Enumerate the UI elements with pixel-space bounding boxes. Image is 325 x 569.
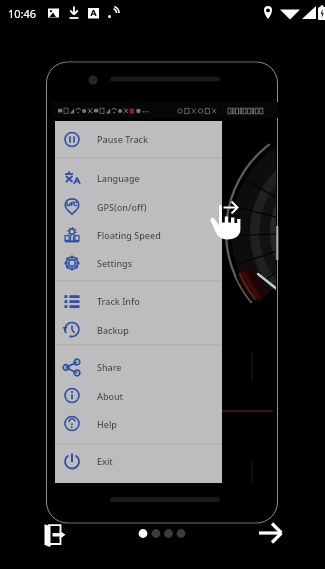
button[interactable]: Skip (36, 517, 68, 549)
staticText: Floating Speed (97, 229, 161, 241)
staticText: GPS(on/off) (97, 201, 147, 213)
button[interactable]: About (55, 382, 222, 410)
staticText: Share (97, 361, 122, 373)
staticText: Exit (97, 455, 113, 467)
staticText: Language (97, 172, 140, 184)
staticText: Help (97, 418, 117, 430)
staticText: Track Info (97, 295, 140, 307)
button[interactable]: Exit (55, 447, 222, 483)
button[interactable]: GPS(on/off) (55, 193, 222, 221)
button[interactable]: Pause Track (55, 121, 222, 158)
button[interactable]: Backup (55, 316, 222, 346)
staticText: Pause Track (97, 133, 148, 145)
staticText: Settings (97, 257, 133, 269)
staticText: Backup (97, 324, 129, 336)
button[interactable]: Settings (55, 249, 222, 281)
button[interactable]: Track Info (55, 287, 222, 316)
button[interactable]: Help (55, 410, 222, 445)
staticText: About (97, 390, 124, 402)
button[interactable]: Floating Speed (55, 221, 222, 250)
button[interactable]: Language (55, 164, 222, 193)
button[interactable]: Share (55, 353, 222, 382)
staticText: 10:46 (8, 6, 37, 21)
button[interactable]: Next (256, 518, 288, 550)
